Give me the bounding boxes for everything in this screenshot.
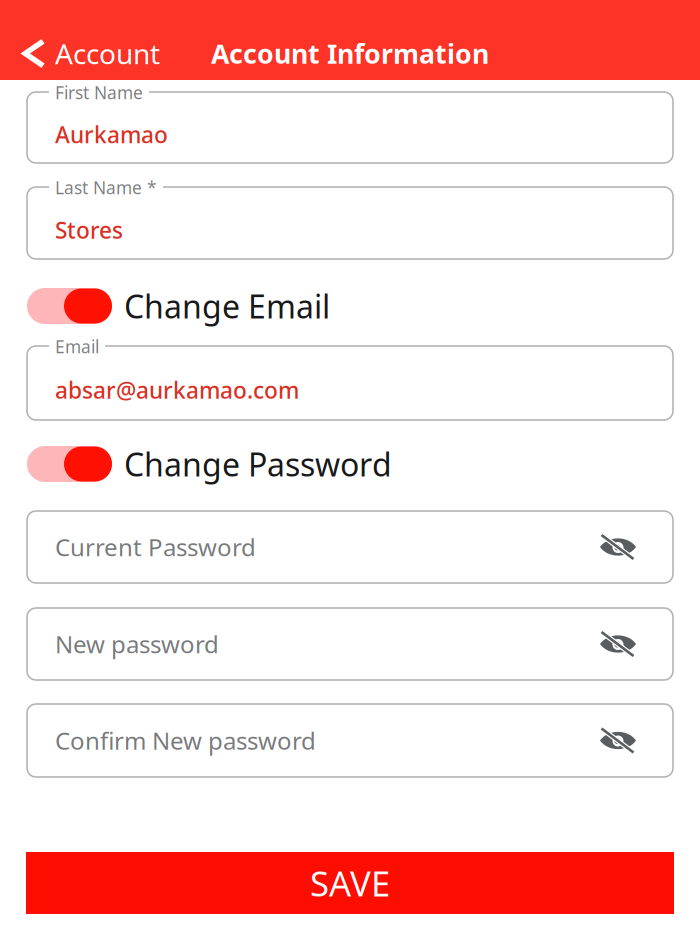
staticText: Stores: [55, 215, 123, 245]
staticText: Email: [55, 335, 99, 358]
button[interactable]: absar@aurkamao.com: [27, 346, 673, 420]
staticText: New password: [55, 628, 219, 660]
staticText: Account: [55, 35, 160, 72]
staticText: Change Email: [124, 285, 330, 327]
staticText: absar@aurkamao.com: [55, 375, 299, 405]
button[interactable]: Account: [0, 27, 176, 80]
staticText: Last Name *: [55, 176, 157, 199]
button[interactable]: SAVE: [26, 852, 674, 914]
staticText: Change Password: [124, 443, 392, 485]
button[interactable]: Stores: [27, 187, 673, 259]
staticText: SAVE: [310, 860, 390, 906]
button[interactable]: Current Password: [27, 511, 673, 583]
staticText: Current Password: [55, 531, 256, 563]
staticText: Account Information: [211, 36, 489, 71]
staticText: Confirm New password: [55, 725, 316, 756]
button[interactable]: Change Email: [27, 287, 673, 325]
staticText: Aurkamao: [55, 119, 168, 149]
button[interactable]: Confirm New password: [27, 704, 673, 777]
staticText: First Name: [55, 81, 143, 104]
button[interactable]: Aurkamao: [27, 92, 673, 163]
button[interactable]: New password: [27, 608, 673, 680]
button[interactable]: Change Password: [27, 445, 673, 483]
